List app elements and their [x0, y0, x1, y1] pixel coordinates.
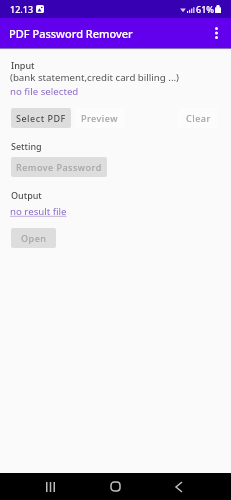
button[interactable]: Recent apps [30, 473, 70, 500]
button[interactable]: Home [95, 473, 135, 500]
staticText: Output [11, 189, 42, 201]
button[interactable]: Open [11, 228, 56, 248]
button[interactable]: no result file [10, 205, 67, 218]
staticText: Input [11, 59, 35, 71]
staticText: Remove Password [16, 161, 102, 173]
staticText: Select PDF [16, 112, 66, 124]
button[interactable]: Remove Password [11, 157, 107, 177]
staticText: Preview [81, 112, 119, 124]
staticText: 12.13 [10, 3, 34, 15]
button[interactable]: Clear [178, 108, 218, 128]
staticText: 61% [196, 3, 214, 15]
button[interactable]: Preview [75, 108, 125, 128]
button[interactable]: no file selected [10, 85, 79, 98]
button[interactable]: More options [201, 18, 231, 48]
staticText: Setting [11, 140, 42, 152]
staticText: (bank statement,credit card billing ...) [10, 71, 179, 84]
staticText: PDF Password Remover [9, 26, 133, 41]
staticText: Open [21, 232, 47, 244]
button[interactable]: Select PDF [11, 108, 71, 128]
button[interactable]: Back [159, 473, 199, 500]
staticText: Clear [186, 112, 211, 124]
